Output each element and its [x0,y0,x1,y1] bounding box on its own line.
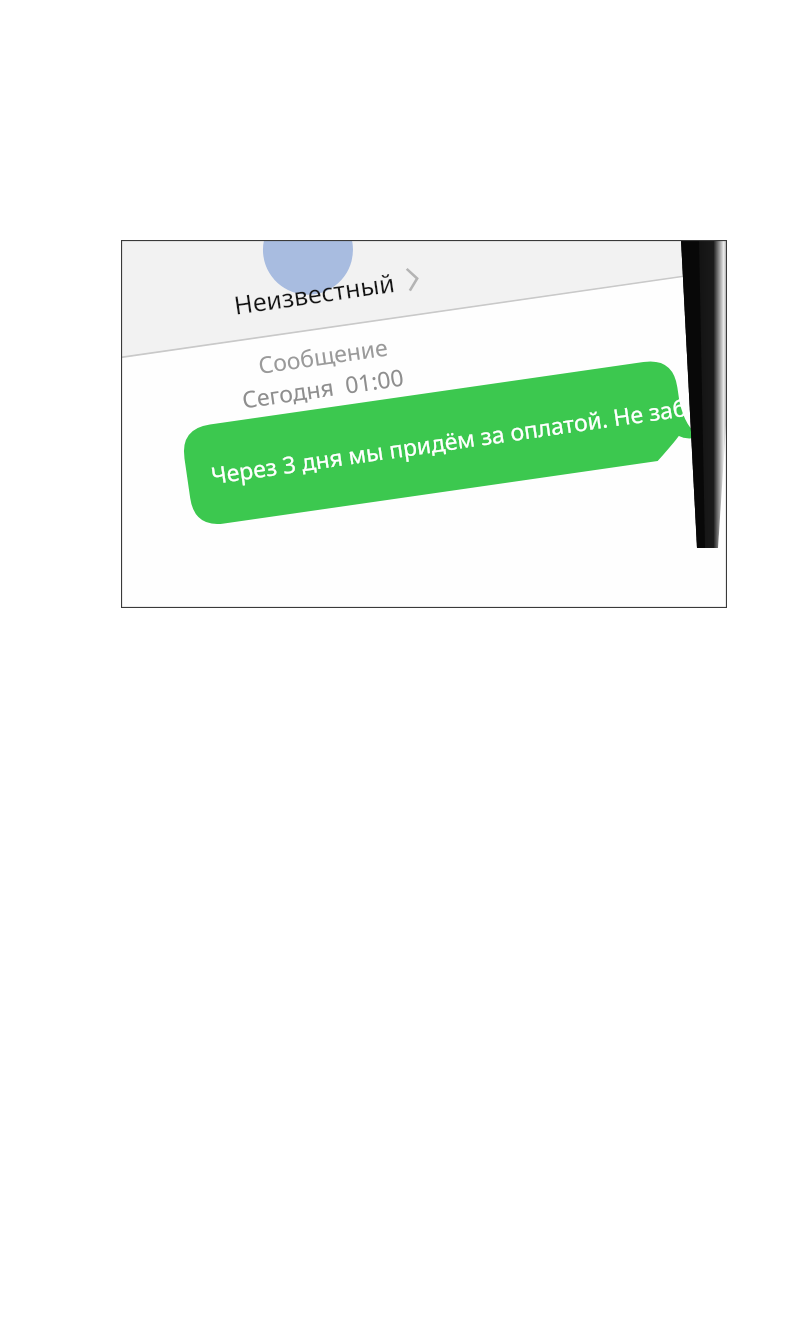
button[interactable]: Message screenshot [0,0,800,1324]
